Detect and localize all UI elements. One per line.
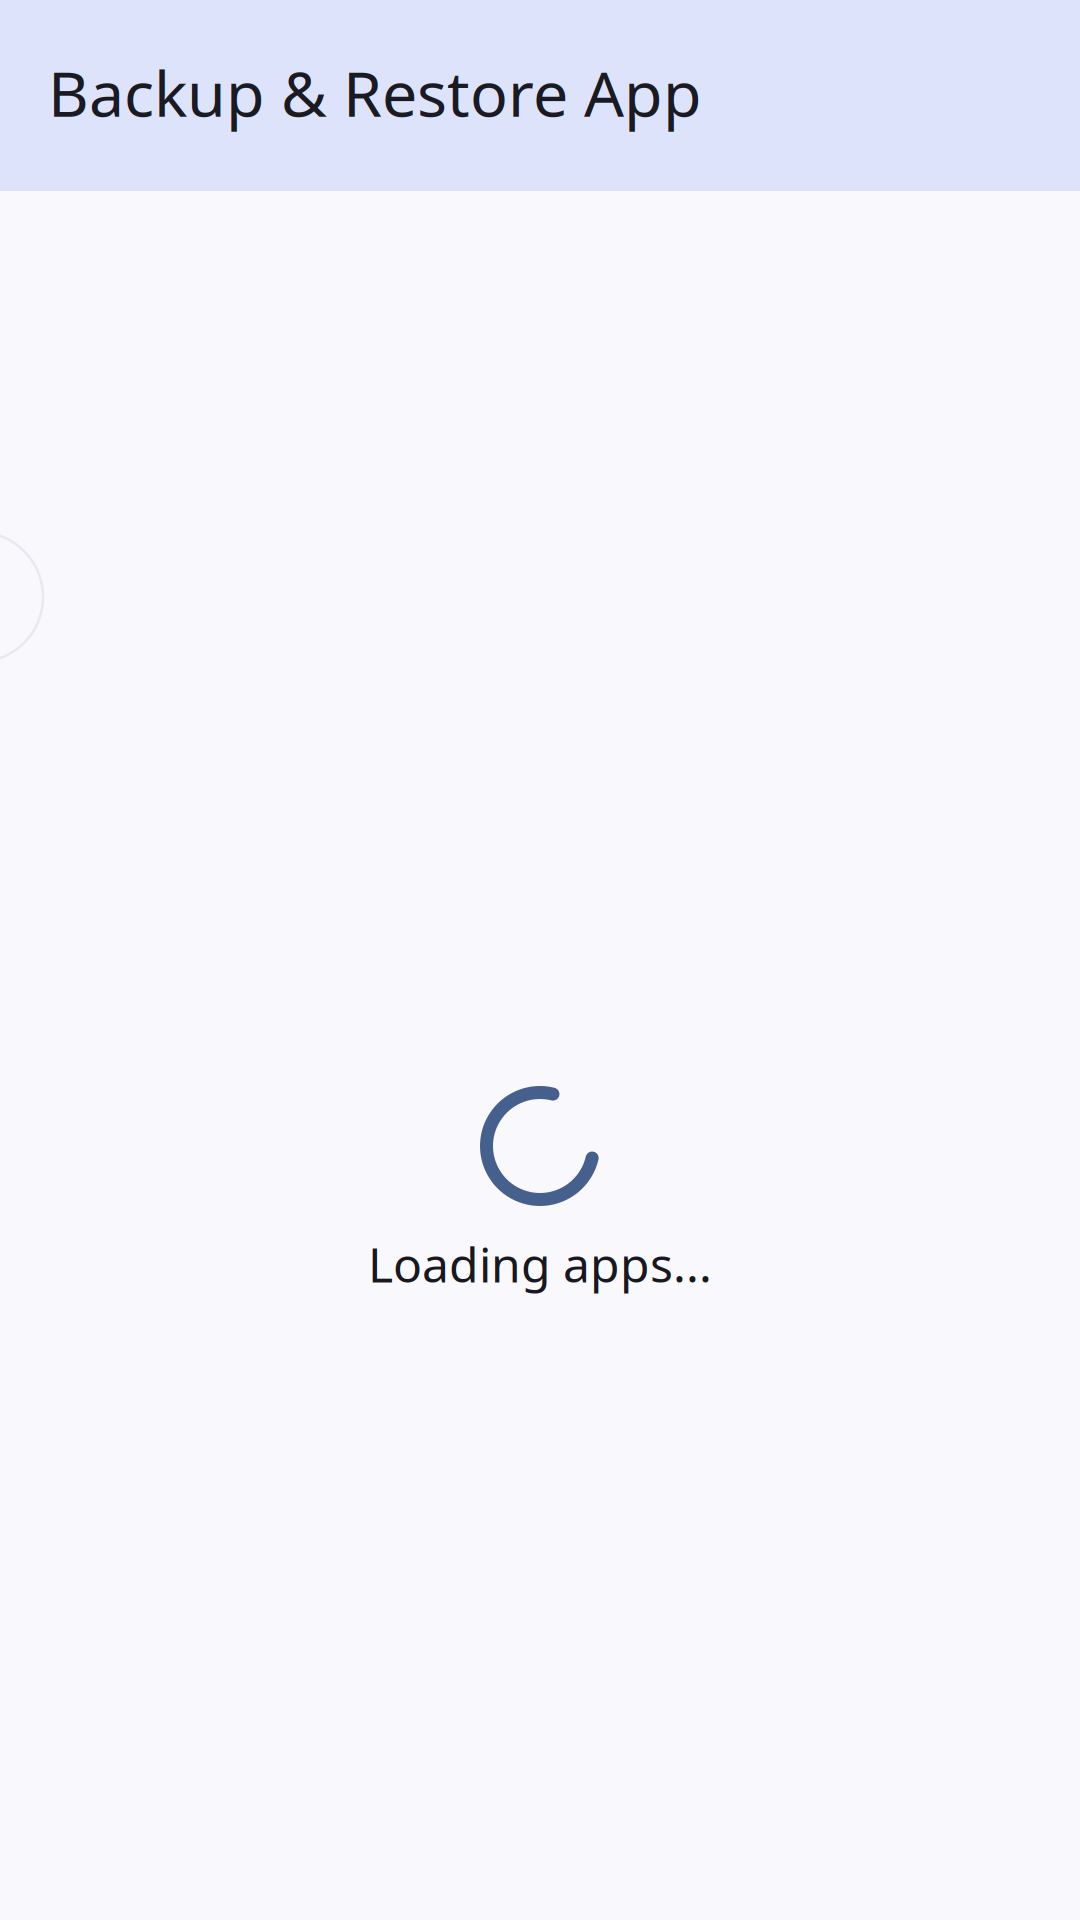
staticText: Loading apps...	[368, 1232, 712, 1296]
staticText: Backup & Restore App	[48, 51, 702, 134]
